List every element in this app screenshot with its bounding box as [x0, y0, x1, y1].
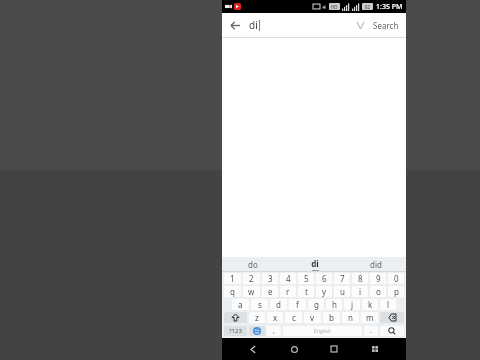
- button[interactable]: c: [285, 312, 302, 323]
- staticText: m: [366, 312, 374, 323]
- button[interactable]: Space: [283, 326, 362, 336]
- button[interactable]: i: [352, 286, 368, 297]
- button[interactable]: di: [284, 257, 345, 272]
- button[interactable]: 6: [316, 273, 332, 284]
- button[interactable]: Recents: [324, 339, 344, 359]
- staticText: ,: [273, 326, 275, 336]
- staticText: c: [292, 312, 296, 323]
- button[interactable]: p: [388, 286, 404, 297]
- staticText: g: [314, 299, 319, 310]
- button[interactable]: e: [262, 286, 278, 297]
- button[interactable]: x: [267, 312, 283, 323]
- button[interactable]: Emoji: [249, 326, 265, 336]
- staticText: 7: [340, 273, 345, 284]
- staticText: 82: [365, 4, 371, 10]
- button[interactable]: o: [370, 286, 386, 297]
- staticText: x: [273, 312, 278, 323]
- button[interactable]: 0: [388, 273, 404, 284]
- staticText: f: [296, 299, 299, 310]
- button[interactable]: .: [364, 326, 378, 336]
- button[interactable]: 2: [243, 273, 260, 284]
- staticText: English: [314, 328, 332, 335]
- button[interactable]: 8: [352, 273, 368, 284]
- button[interactable]: Menu: [365, 339, 385, 359]
- button[interactable]: g: [308, 299, 324, 310]
- button[interactable]: b: [323, 312, 340, 323]
- button[interactable]: ,: [267, 326, 281, 336]
- staticText: h: [332, 299, 337, 310]
- button[interactable]: Search: [371, 20, 401, 31]
- button[interactable]: ?123: [224, 326, 247, 336]
- staticText: u: [340, 286, 345, 297]
- staticText: 9: [376, 273, 381, 284]
- staticText: p: [394, 286, 399, 297]
- staticText: s: [258, 299, 262, 310]
- staticText: e: [268, 286, 273, 297]
- button[interactable]: k: [362, 299, 378, 310]
- button[interactable]: 3: [262, 273, 278, 284]
- button[interactable]: j: [344, 299, 360, 310]
- staticText: w: [248, 286, 255, 297]
- staticText: k: [368, 299, 373, 310]
- button[interactable]: s: [251, 299, 268, 310]
- button[interactable]: Home: [284, 339, 304, 359]
- button[interactable]: a: [232, 299, 249, 310]
- staticText: 6: [322, 273, 327, 284]
- button[interactable]: Back: [243, 339, 263, 359]
- staticText: did: [370, 259, 382, 270]
- button[interactable]: Backspace: [380, 312, 404, 323]
- button[interactable]: z: [249, 312, 265, 323]
- button[interactable]: t: [298, 286, 314, 297]
- staticText: d: [276, 299, 281, 310]
- staticText: b: [329, 312, 334, 323]
- staticText: ?123: [229, 327, 242, 335]
- button[interactable]: v: [304, 312, 321, 323]
- button[interactable]: l: [380, 299, 396, 310]
- button[interactable]: Shift: [224, 312, 247, 323]
- button[interactable]: y: [316, 286, 332, 297]
- staticText: y: [322, 286, 327, 297]
- button[interactable]: f: [289, 299, 306, 310]
- staticText: 3: [268, 273, 273, 284]
- button[interactable]: h: [326, 299, 342, 310]
- button[interactable]: did: [345, 257, 406, 272]
- staticText: 8: [358, 273, 363, 284]
- staticText: o: [376, 286, 381, 297]
- staticText: .: [370, 326, 372, 336]
- staticText: r: [286, 286, 290, 297]
- button[interactable]: 4: [280, 273, 296, 284]
- staticText: l: [387, 299, 390, 310]
- button[interactable]: n: [342, 312, 359, 323]
- button[interactable]: Search: [380, 326, 404, 336]
- button[interactable]: di: [249, 13, 353, 37]
- staticText: do: [248, 259, 258, 270]
- button[interactable]: 5: [298, 273, 314, 284]
- button[interactable]: u: [334, 286, 350, 297]
- staticText: z: [255, 312, 259, 323]
- staticText: HD: [331, 4, 338, 10]
- button[interactable]: d: [270, 299, 287, 310]
- button[interactable]: 1: [224, 273, 241, 284]
- staticText: 5: [304, 273, 309, 284]
- button[interactable]: 7: [334, 273, 350, 284]
- staticText: ✳: [322, 4, 327, 10]
- button[interactable]: Back: [227, 17, 243, 33]
- staticText: 2: [249, 273, 254, 284]
- staticText: j: [351, 299, 354, 310]
- button[interactable]: do: [222, 257, 284, 272]
- button[interactable]: r: [280, 286, 296, 297]
- staticText: i: [359, 286, 362, 297]
- staticText: 1:35 PM: [376, 2, 403, 12]
- staticText: di: [311, 258, 319, 269]
- staticText: 4: [286, 273, 291, 284]
- button[interactable]: m: [361, 312, 378, 323]
- staticText: 1: [230, 273, 235, 284]
- staticText: Search: [373, 20, 399, 31]
- staticText: a: [238, 299, 243, 310]
- button[interactable]: w: [243, 286, 260, 297]
- staticText: 0: [394, 273, 399, 284]
- button[interactable]: Voice search: [353, 18, 367, 32]
- button[interactable]: 9: [370, 273, 386, 284]
- staticText: t: [305, 286, 308, 297]
- button[interactable]: q: [224, 286, 241, 297]
